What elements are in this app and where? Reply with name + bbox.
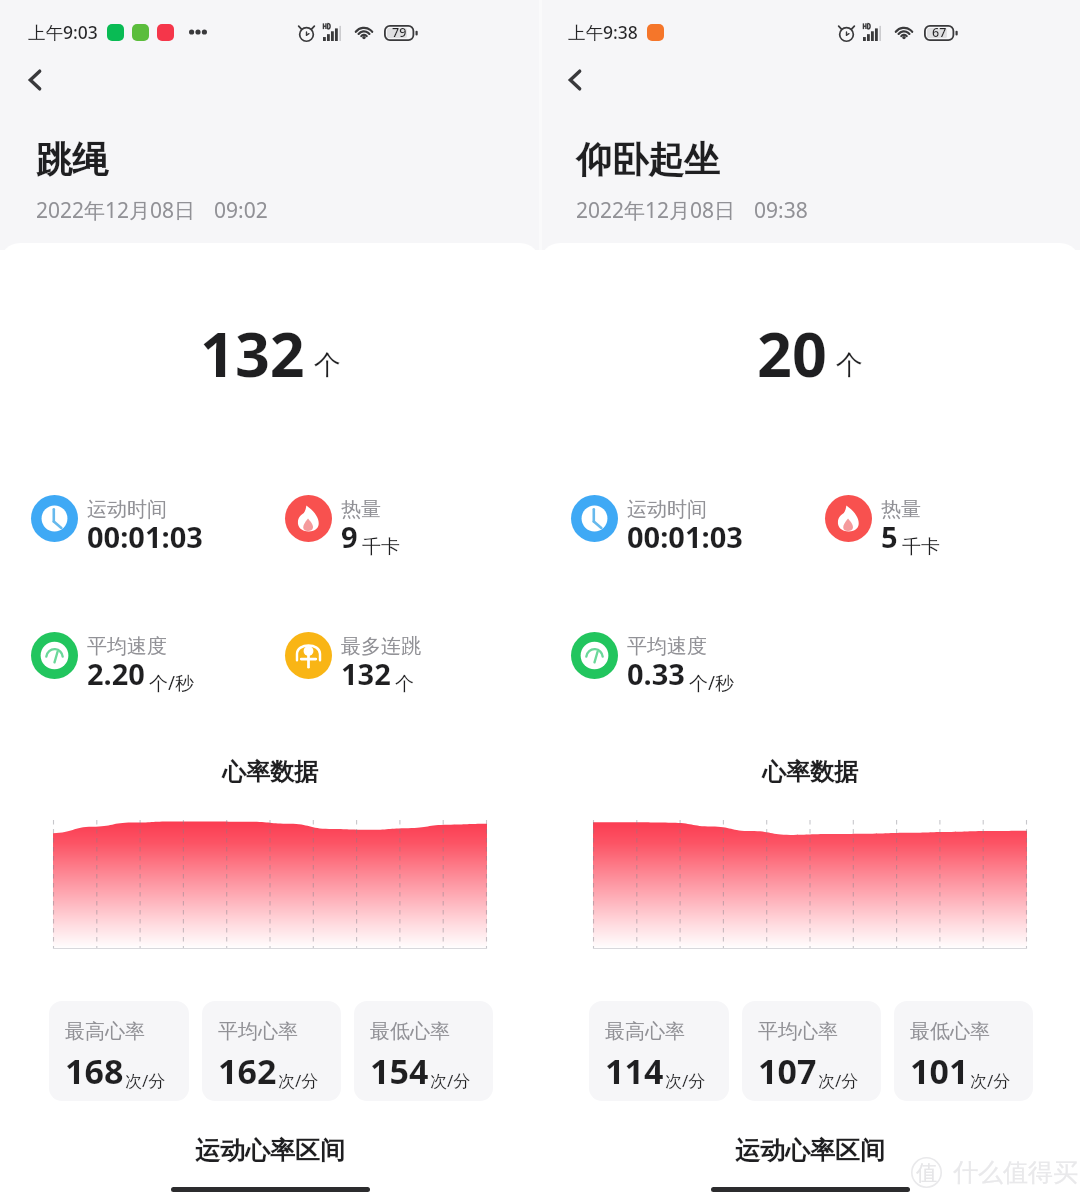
staticText: 平均心率	[218, 1019, 298, 1044]
staticText: 热量	[341, 497, 381, 522]
staticText: 运动时间	[627, 497, 707, 522]
staticText: 00:01:03	[627, 517, 743, 556]
staticText: 最高心率	[605, 1019, 685, 1044]
staticText: 千卡	[362, 535, 400, 559]
staticText: 运动时间	[87, 497, 167, 522]
button[interactable]: 平均心率	[742, 1001, 881, 1101]
staticText: 154	[370, 1048, 429, 1094]
staticText: 最低心率	[370, 1019, 450, 1044]
staticText: 个/秒	[149, 670, 195, 696]
staticText: 心率数据	[0, 757, 540, 787]
staticText: 最低心率	[910, 1019, 990, 1044]
staticText: 5	[881, 517, 898, 556]
staticText: 什么值得买	[953, 1157, 1078, 1188]
staticText: 上午9:38	[568, 20, 638, 44]
button[interactable]: 最低心率	[354, 1001, 493, 1101]
staticText: 次/分	[278, 1069, 319, 1092]
staticText: 次/分	[125, 1069, 166, 1092]
staticText: 00:01:03	[87, 517, 203, 556]
staticText: 心率数据	[540, 757, 1080, 787]
button[interactable]: Back	[13, 58, 57, 102]
staticText: 个	[314, 348, 341, 382]
staticText: 跳绳	[36, 137, 108, 182]
staticText: 个	[395, 672, 414, 696]
staticText: 次/分	[665, 1069, 706, 1092]
staticText: 平均速度	[627, 634, 707, 659]
staticText: 09:02	[214, 196, 268, 225]
staticText: 2.20	[87, 654, 145, 693]
staticText: 次/分	[818, 1069, 859, 1092]
staticText: 132	[341, 654, 391, 693]
staticText: 9	[341, 517, 358, 556]
staticText: 平均心率	[758, 1019, 838, 1044]
staticText: 千卡	[902, 535, 940, 559]
staticText: 107	[758, 1048, 817, 1094]
staticText: 162	[218, 1048, 277, 1094]
staticText: 值	[916, 1160, 937, 1186]
staticText: 次/分	[430, 1069, 471, 1092]
staticText: 个/秒	[689, 670, 735, 696]
staticText: 168	[65, 1048, 124, 1094]
staticText: 最高心率	[65, 1019, 145, 1044]
staticText: 热量	[881, 497, 921, 522]
button[interactable]: 最低心率	[894, 1001, 1033, 1101]
staticText: 上午9:03	[28, 20, 98, 44]
staticText: 132	[200, 312, 305, 395]
staticText: 09:38	[754, 196, 808, 225]
staticText: 个	[836, 348, 863, 382]
staticText: 0.33	[627, 654, 685, 693]
staticText: 运动心率区间	[540, 1135, 1080, 1166]
button[interactable]: 平均心率	[202, 1001, 341, 1101]
staticText: 67	[932, 24, 947, 41]
staticText: 仰卧起坐	[576, 137, 720, 182]
staticText: 20	[757, 312, 827, 395]
staticText: 运动心率区间	[0, 1135, 540, 1166]
button[interactable]: Back	[553, 58, 597, 102]
staticText: 79	[392, 24, 407, 41]
staticText: 2022年12月08日	[36, 196, 196, 225]
button[interactable]: 最高心率	[49, 1001, 189, 1101]
staticText: 最多连跳	[341, 634, 421, 659]
staticText: 101	[910, 1048, 969, 1094]
staticText: 次/分	[970, 1069, 1011, 1092]
button[interactable]: 最高心率	[589, 1001, 729, 1101]
staticText: 2022年12月08日	[576, 196, 736, 225]
staticText: 平均速度	[87, 634, 167, 659]
staticText: 114	[605, 1048, 664, 1094]
